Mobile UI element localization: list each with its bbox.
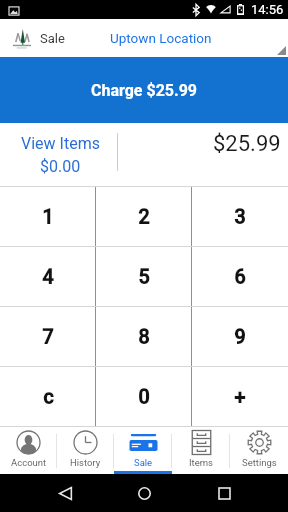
staticText: Sale <box>134 457 153 468</box>
button[interactable]: 1 <box>0 187 96 246</box>
staticText: 7 <box>42 325 54 348</box>
staticText: 9 <box>234 325 246 348</box>
staticText: 4 <box>42 265 54 288</box>
button[interactable]: + <box>192 367 288 426</box>
button[interactable]: Charge $25.99 <box>0 57 288 123</box>
staticText: Uptown Location <box>110 30 212 46</box>
button[interactable]: Uptown Location <box>110 30 212 46</box>
staticText: 0 <box>138 385 150 408</box>
staticText: 14:56 <box>251 2 284 17</box>
staticText: 1 <box>42 205 54 228</box>
staticText: Sale <box>40 31 65 46</box>
staticText: 2 <box>138 205 150 228</box>
staticText: Settings <box>242 457 277 468</box>
button[interactable]: View Items <box>5 134 115 176</box>
button[interactable]: 9 <box>192 307 288 366</box>
button[interactable]: Menu <box>9 25 35 51</box>
staticText: + <box>234 385 246 408</box>
staticText: 6 <box>234 265 246 288</box>
staticText: $0.00 <box>40 157 81 176</box>
staticText: 3 <box>234 205 246 228</box>
button[interactable]: Settings <box>230 427 288 474</box>
button[interactable]: 2 <box>96 187 192 246</box>
button[interactable]: Sale <box>114 427 172 474</box>
staticText: Account <box>11 457 47 468</box>
staticText: $25.99 <box>213 131 281 157</box>
button[interactable]: 8 <box>96 307 192 366</box>
button[interactable]: c <box>0 367 96 426</box>
staticText: View Items <box>21 134 100 153</box>
staticText: Items <box>189 457 213 468</box>
button[interactable]: Home <box>126 475 162 511</box>
staticText: c <box>43 385 54 408</box>
button[interactable]: 5 <box>96 247 192 306</box>
button[interactable]: 4 <box>0 247 96 306</box>
staticText: History <box>70 457 101 468</box>
button[interactable]: Recents <box>206 475 242 511</box>
button[interactable]: Account <box>0 427 57 474</box>
button[interactable]: Items <box>172 427 230 474</box>
button[interactable]: History <box>57 427 114 474</box>
staticText: 5 <box>138 265 150 288</box>
button[interactable]: Back <box>47 475 83 511</box>
staticText: Charge $25.99 <box>91 81 197 100</box>
button[interactable]: 7 <box>0 307 96 366</box>
staticText: 8 <box>138 325 150 348</box>
button[interactable]: 0 <box>96 367 192 426</box>
button[interactable]: 6 <box>192 247 288 306</box>
button[interactable]: 3 <box>192 187 288 246</box>
